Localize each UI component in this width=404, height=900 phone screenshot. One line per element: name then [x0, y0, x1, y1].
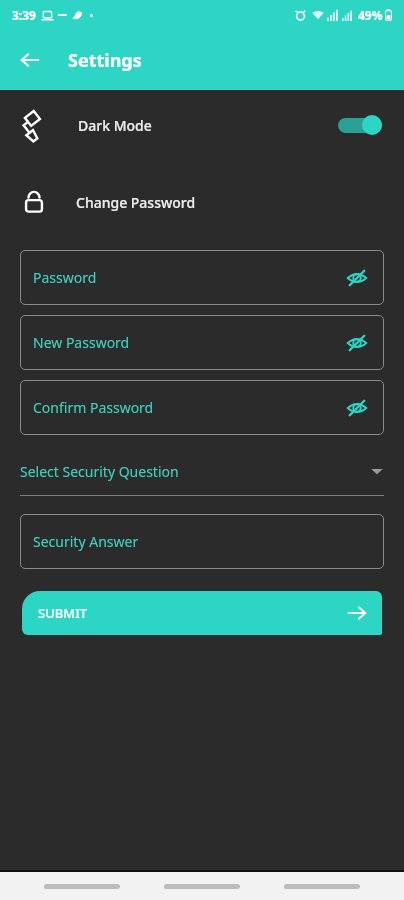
button[interactable]: Back [8, 38, 52, 82]
staticText: Dark Mode [78, 116, 152, 135]
staticText: New Password [33, 333, 130, 352]
staticText: Security Answer [33, 532, 139, 551]
staticText: Settings [68, 48, 142, 73]
button[interactable]: Navigation button [164, 884, 240, 889]
button[interactable]: Dark Mode toggle [338, 115, 382, 135]
staticText: SUBMIT [38, 604, 88, 622]
button[interactable]: Navigation button [44, 884, 120, 889]
button[interactable]: Dark Mode [0, 94, 404, 156]
staticText: Password [33, 268, 97, 287]
staticText: Confirm Password [33, 398, 154, 417]
button[interactable]: SUBMIT [22, 591, 382, 635]
button[interactable]: Security Answer [20, 514, 384, 569]
button[interactable]: Toggle password visibility [340, 391, 374, 425]
staticText: Select Security Question [20, 462, 179, 481]
staticText: 49% [358, 7, 383, 23]
button[interactable]: Navigation button [284, 884, 360, 889]
button[interactable]: Password [20, 250, 384, 305]
button[interactable]: Select Security Question [0, 453, 404, 496]
button[interactable]: New Password [20, 315, 384, 370]
button[interactable]: Confirm Password [20, 380, 384, 435]
button[interactable]: Change Password [0, 178, 404, 226]
button[interactable]: Toggle password visibility [340, 326, 374, 360]
button[interactable]: Toggle password visibility [340, 261, 374, 295]
staticText: 3:39 [12, 7, 36, 23]
staticText: Change Password [76, 193, 196, 212]
